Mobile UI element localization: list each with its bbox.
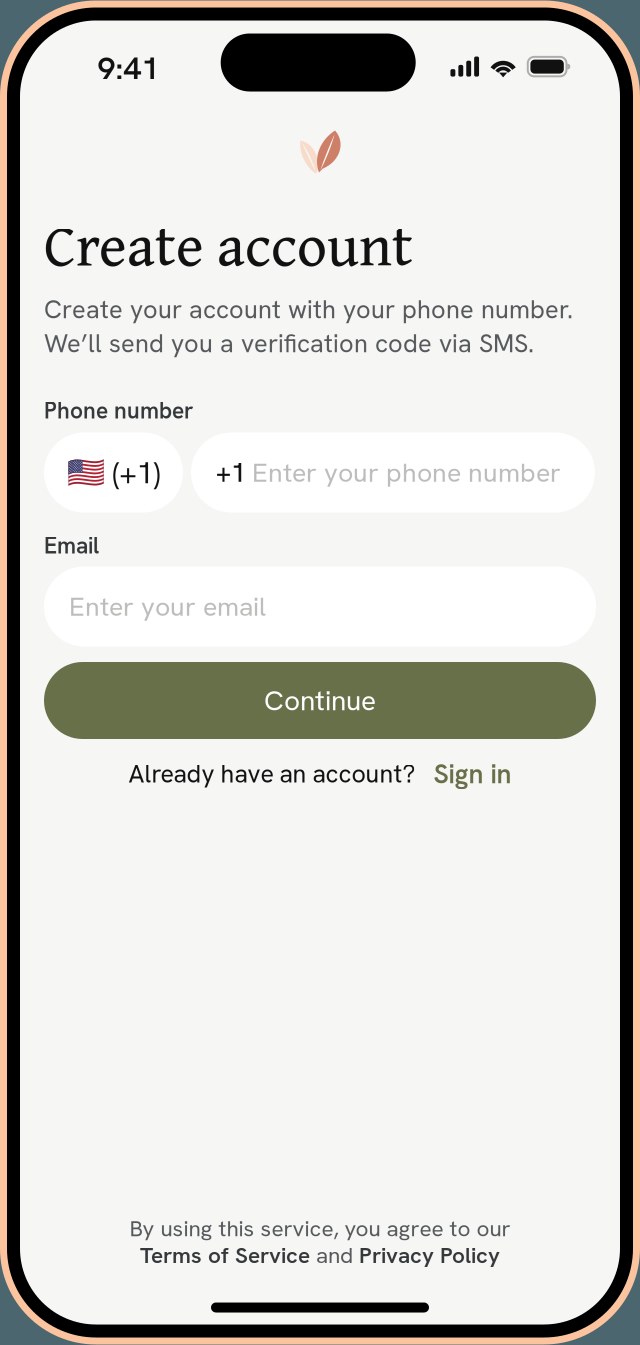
- staticText: Email: [44, 531, 99, 560]
- staticText: By using this service, you agree to our: [129, 1214, 510, 1243]
- staticText: Create your account with your phone numb…: [44, 293, 573, 326]
- staticText: Enter your email: [69, 589, 266, 624]
- staticText: Continue: [264, 682, 376, 719]
- button[interactable]: Terms of Service: [140, 1240, 310, 1270]
- staticText: 9:41: [97, 47, 159, 89]
- button[interactable]: Enter your email: [44, 566, 596, 646]
- staticText: +1: [216, 455, 246, 490]
- button[interactable]: Continue: [44, 662, 596, 739]
- staticText: Terms of Service: [140, 1240, 310, 1270]
- button[interactable]: Privacy Policy: [359, 1240, 500, 1270]
- staticText: Create account: [44, 201, 413, 287]
- staticText: 🇺🇸: [66, 454, 104, 490]
- staticText: Already have an account?: [128, 758, 415, 790]
- button[interactable]: +1: [191, 432, 595, 512]
- button[interactable]: 🇺🇸: [44, 432, 183, 512]
- staticText: and: [310, 1240, 359, 1270]
- staticText: (+1): [112, 452, 160, 492]
- staticText: Enter your phone number: [252, 455, 561, 490]
- staticText: We’ll send you a verification code via S…: [44, 327, 534, 360]
- staticText: Privacy Policy: [359, 1240, 500, 1270]
- button[interactable]: Sign in: [433, 756, 511, 791]
- staticText: Phone number: [44, 396, 194, 425]
- staticText: Sign in: [433, 756, 511, 791]
